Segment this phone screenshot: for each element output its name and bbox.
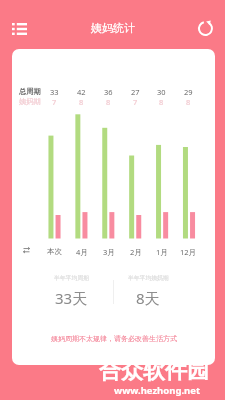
staticText: 12月 bbox=[180, 247, 197, 257]
staticText: 姨妈期 bbox=[19, 97, 41, 106]
staticText: 30 bbox=[157, 87, 166, 97]
staticText: 1月 bbox=[156, 247, 168, 257]
staticText: 姨妈周期不太规律，请务必改善生活方式 bbox=[51, 334, 177, 343]
staticText: www.hezhong.net bbox=[114, 384, 201, 397]
button[interactable]: Refresh bbox=[190, 12, 222, 44]
staticText: 8 bbox=[106, 97, 111, 107]
staticText: 姨妈统计 bbox=[91, 21, 135, 35]
staticText: 27 bbox=[131, 87, 140, 97]
staticText: 总周期 bbox=[19, 87, 41, 96]
staticText: 本次 bbox=[47, 247, 62, 256]
staticText: 半年平均周期 bbox=[54, 274, 89, 281]
staticText: 4月 bbox=[76, 247, 88, 257]
button[interactable]: Menu bbox=[2, 11, 38, 43]
staticText: 3月 bbox=[103, 247, 115, 257]
staticText: 8天 bbox=[136, 288, 160, 308]
staticText: 8 bbox=[186, 97, 191, 107]
staticText: 36 bbox=[104, 87, 113, 97]
staticText: 半年平均姨妈期 bbox=[128, 274, 169, 281]
staticText: 合众软件园 bbox=[99, 357, 209, 385]
staticText: 7 bbox=[52, 97, 57, 107]
staticText: 33 bbox=[50, 87, 59, 97]
staticText: 2月 bbox=[130, 247, 142, 257]
staticText: 7 bbox=[133, 97, 138, 107]
staticText: 42 bbox=[77, 87, 86, 97]
staticText: 33天 bbox=[55, 288, 88, 308]
staticText: 29 bbox=[184, 87, 193, 97]
staticText: 8 bbox=[159, 97, 164, 107]
staticText: 8 bbox=[79, 97, 84, 107]
